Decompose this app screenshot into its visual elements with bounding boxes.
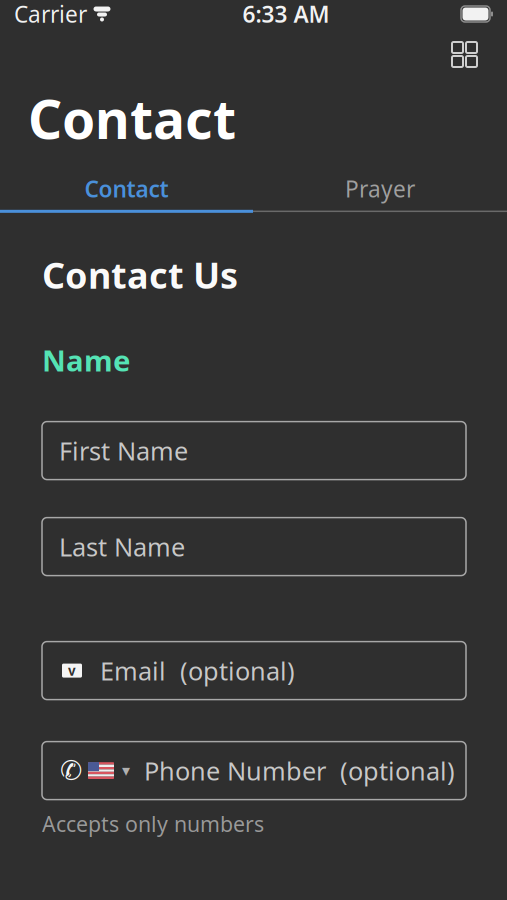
staticText: Accepts only numbers xyxy=(42,810,264,838)
staticText: Contact xyxy=(84,174,168,204)
button[interactable]: Prayer xyxy=(253,168,507,210)
staticText: 6:33 AM xyxy=(242,0,329,29)
staticText: Contact Us xyxy=(42,251,238,299)
staticText: Prayer xyxy=(345,174,415,204)
button[interactable]: v xyxy=(42,642,466,700)
staticText: ▾ xyxy=(122,761,130,780)
staticText: v xyxy=(68,662,76,679)
staticText: ✆ xyxy=(60,755,82,786)
staticText: Last Name xyxy=(59,530,185,563)
button[interactable]: Menu xyxy=(446,36,483,73)
staticText: Phone Number (optional) xyxy=(144,754,455,787)
staticText: First Name xyxy=(59,434,188,467)
button[interactable]: First Name xyxy=(42,422,466,480)
button[interactable]: Last Name xyxy=(42,518,466,576)
staticText: Contact xyxy=(28,83,236,154)
staticText: Carrier xyxy=(14,0,87,29)
button[interactable]: ✆ xyxy=(42,742,466,800)
button[interactable]: Contact xyxy=(0,168,253,210)
staticText: Email (optional) xyxy=(100,654,295,687)
staticText: Name xyxy=(42,341,131,380)
